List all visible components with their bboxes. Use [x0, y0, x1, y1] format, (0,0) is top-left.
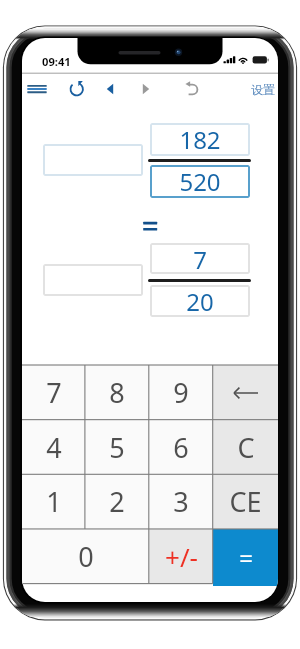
button[interactable]: = — [213, 529, 278, 586]
button[interactable]: 设置 — [247, 75, 278, 103]
button[interactable]: 3 — [149, 474, 213, 529]
button[interactable]: Whole number field 2 — [43, 264, 143, 296]
staticText: 7 — [193, 243, 207, 274]
staticText: 4 — [46, 429, 62, 466]
staticText: 3 — [173, 483, 189, 520]
button[interactable]: 9 — [149, 365, 213, 420]
button[interactable]: 7 — [22, 365, 85, 420]
staticText: 设置 — [251, 82, 275, 97]
button[interactable]: 520 — [150, 165, 250, 198]
staticText: 5 — [109, 429, 125, 466]
button[interactable]: Backspace — [213, 365, 278, 420]
button[interactable]: 4 — [22, 420, 85, 475]
button[interactable]: 1 — [22, 474, 85, 529]
staticText: 6 — [173, 429, 189, 466]
button[interactable]: Undo — [177, 75, 207, 103]
staticText: 7 — [46, 374, 62, 411]
staticText: 20 — [186, 285, 214, 317]
button[interactable]: CE — [213, 474, 278, 529]
staticText: C — [237, 429, 255, 466]
staticText: 9 — [173, 374, 189, 411]
button[interactable]: Reset — [62, 75, 92, 103]
button[interactable]: Previous — [96, 75, 124, 103]
staticText: 8 — [109, 374, 125, 411]
staticText: +/- — [165, 539, 198, 574]
button[interactable]: 20 — [150, 285, 250, 317]
button[interactable]: 7 — [150, 243, 250, 274]
staticText: CE — [229, 483, 262, 520]
button[interactable]: Menu — [22, 75, 52, 103]
staticText: 0 — [78, 538, 94, 575]
button[interactable]: +/- — [149, 529, 213, 584]
button[interactable]: 8 — [85, 365, 149, 420]
button[interactable]: Next — [132, 75, 160, 103]
button[interactable]: 6 — [149, 420, 213, 475]
button[interactable]: 5 — [85, 420, 149, 475]
button[interactable]: Whole number field 1 — [43, 144, 143, 176]
button[interactable]: 0 — [22, 529, 149, 584]
button[interactable]: 182 — [150, 123, 250, 156]
staticText: 2 — [109, 483, 125, 520]
staticText: 09:41 — [42, 54, 71, 69]
button[interactable]: C — [213, 420, 278, 475]
staticText: 1 — [46, 483, 62, 520]
staticText: 182 — [179, 123, 221, 156]
staticText: = — [239, 541, 253, 574]
staticText: 520 — [179, 165, 221, 198]
button[interactable]: 2 — [85, 474, 149, 529]
